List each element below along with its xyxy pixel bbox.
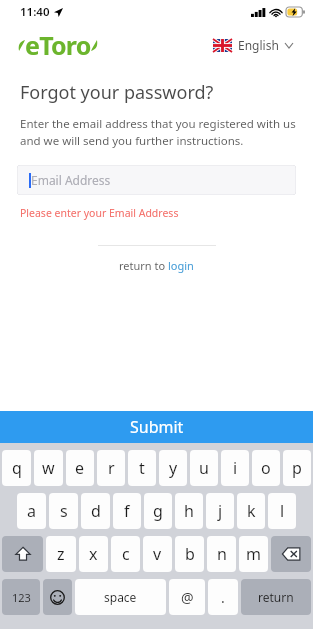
button[interactable]: i (221, 450, 249, 486)
button[interactable]: z (46, 536, 76, 572)
staticText: 123 (12, 590, 31, 605)
button[interactable]: . (208, 579, 238, 615)
staticText: w (42, 457, 55, 479)
staticText: Forgot your password? (20, 80, 214, 105)
button[interactable]: g (144, 493, 172, 529)
staticText: t (139, 457, 145, 479)
staticText: . (221, 588, 225, 607)
staticText: y (169, 457, 178, 479)
button[interactable]: r (97, 450, 125, 486)
staticText: return (258, 589, 294, 605)
button[interactable]: l (268, 493, 296, 529)
button[interactable]: m (239, 536, 268, 572)
staticText: @ (181, 588, 194, 607)
staticText: return to (119, 258, 168, 273)
staticText: Please enter your Email Address (20, 206, 179, 220)
staticText: login (168, 258, 194, 273)
button[interactable]: h (175, 493, 203, 529)
staticText: b (185, 543, 195, 565)
button[interactable]: 123 (2, 579, 40, 615)
button[interactable]: n (207, 536, 236, 572)
staticText: v (153, 543, 162, 565)
button[interactable]: @ (169, 579, 205, 615)
staticText: 11:40 (20, 4, 50, 20)
button[interactable]: d (81, 493, 110, 529)
staticText: c (122, 543, 130, 565)
button[interactable]: Email Address (17, 165, 296, 195)
staticText: u (199, 457, 209, 479)
button[interactable]: q (2, 450, 31, 486)
button[interactable]: Backspace (271, 536, 311, 572)
button[interactable]: return to (113, 256, 200, 275)
staticText: s (60, 500, 68, 522)
staticText: Enter the email address that you registe… (20, 116, 297, 148)
staticText: n (217, 543, 227, 565)
button[interactable]: return (241, 579, 311, 615)
button[interactable]: c (111, 536, 140, 572)
staticText: Email Address (31, 172, 111, 188)
staticText: a (27, 500, 36, 522)
button[interactable]: Submit (0, 411, 313, 443)
staticText: d (91, 500, 101, 522)
staticText: f (124, 500, 130, 522)
staticText: k (247, 500, 256, 522)
staticText: z (57, 543, 65, 565)
button[interactable]: o (252, 450, 280, 486)
staticText: h (184, 500, 194, 522)
button[interactable]: a (17, 493, 46, 529)
staticText: i (233, 457, 238, 479)
staticText: g (153, 500, 163, 522)
button[interactable]: u (190, 450, 218, 486)
staticText: space (104, 589, 137, 605)
staticText: o (261, 457, 271, 479)
button[interactable]: x (79, 536, 108, 572)
button[interactable]: Shift (2, 536, 43, 572)
button[interactable]: English (209, 33, 297, 57)
button[interactable]: j (206, 493, 234, 529)
button[interactable]: s (49, 493, 78, 529)
button[interactable]: space (75, 579, 166, 615)
staticText: m (246, 543, 261, 565)
button[interactable]: Emoji (43, 579, 72, 615)
staticText: j (218, 500, 223, 522)
staticText: eToro (25, 28, 91, 62)
button[interactable]: k (237, 493, 265, 529)
button[interactable]: w (34, 450, 63, 486)
staticText: x (89, 543, 98, 565)
button[interactable]: t (128, 450, 156, 486)
button[interactable]: v (143, 536, 172, 572)
button[interactable]: b (175, 536, 204, 572)
staticText: r (108, 457, 115, 479)
staticText: p (292, 457, 302, 479)
button[interactable]: p (283, 450, 311, 486)
button[interactable]: f (113, 493, 141, 529)
staticText: l (280, 500, 285, 522)
staticText: e (75, 457, 85, 479)
button[interactable]: y (159, 450, 187, 486)
button[interactable]: e (66, 450, 94, 486)
staticText: English (238, 37, 279, 53)
staticText: Submit (130, 416, 184, 438)
staticText: q (12, 457, 22, 479)
